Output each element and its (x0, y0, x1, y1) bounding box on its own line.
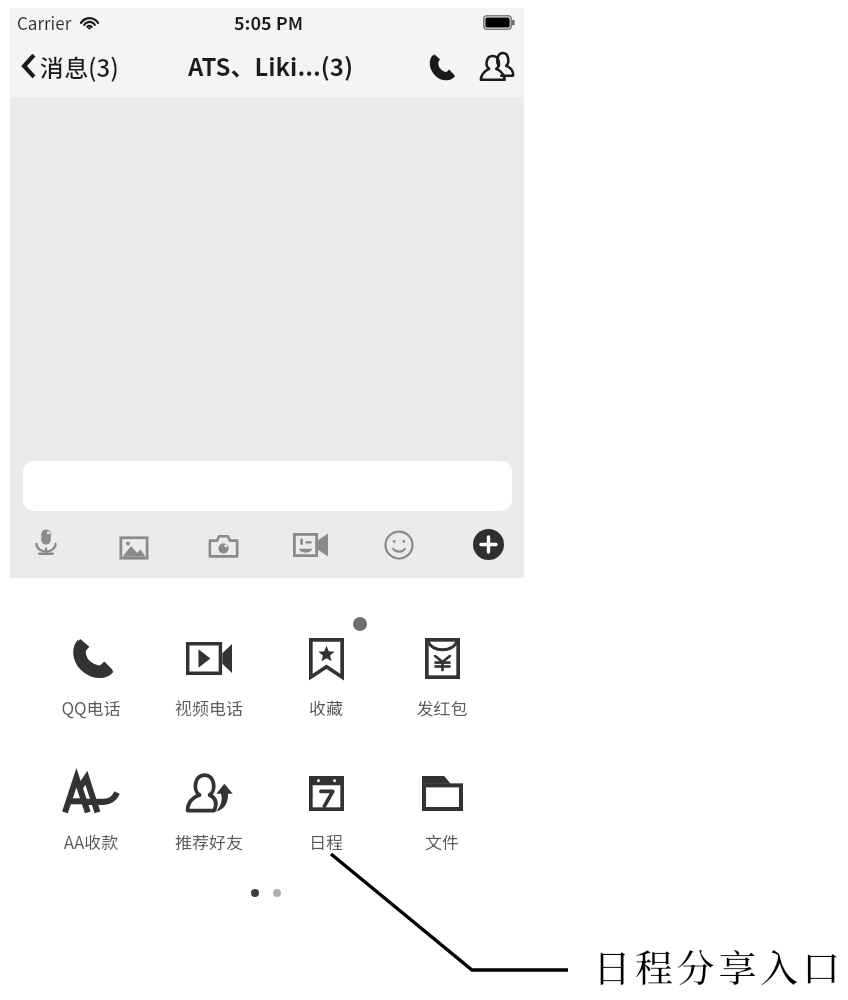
button[interactable]: Call (420, 46, 462, 88)
staticText: ATS、Liki...(3) (188, 48, 354, 83)
button[interactable]: Group members (476, 46, 518, 88)
button[interactable]: Video chat (289, 524, 331, 566)
button[interactable]: Emoji (378, 524, 420, 566)
staticText: QQ电话 (36, 695, 146, 720)
button[interactable]: 推荐好友 (154, 755, 264, 851)
button[interactable]: 日程 (271, 755, 381, 851)
button[interactable]: AA收款 (36, 755, 146, 851)
button[interactable]: 消息(3) (18, 43, 123, 89)
button[interactable]: 收藏 (271, 620, 381, 716)
staticText: 收藏 (271, 695, 381, 720)
button[interactable]: More options (473, 529, 504, 560)
staticText: 日程 (271, 829, 381, 854)
staticText: 日程分享入口 (593, 938, 844, 993)
staticText: Carrier (17, 10, 72, 35)
button[interactable]: 文件 (387, 755, 497, 851)
button[interactable]: Voice (25, 524, 67, 566)
staticText: 5:05 PM (234, 9, 304, 35)
button[interactable]: Photo (113, 524, 155, 566)
button[interactable]: QQ电话 (36, 620, 146, 716)
staticText: 发红包 (387, 695, 497, 720)
button[interactable]: 视频电话 (154, 620, 264, 716)
staticText: 消息(3) (40, 49, 119, 84)
staticText: 文件 (387, 829, 497, 854)
staticText: 视频电话 (154, 695, 264, 720)
staticText: 推荐好友 (154, 829, 264, 854)
button[interactable]: 发红包 (387, 620, 497, 716)
button[interactable]: Camera (202, 524, 244, 566)
staticText: AA收款 (36, 829, 146, 854)
